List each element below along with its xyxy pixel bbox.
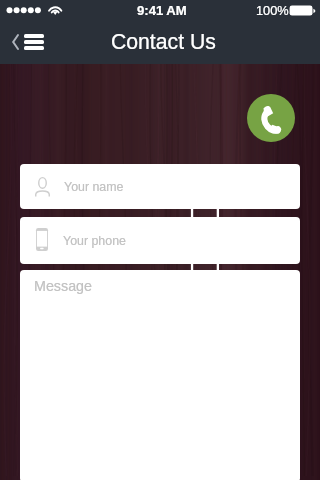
button[interactable]: Call — [247, 94, 295, 142]
button[interactable]: Your name — [20, 164, 300, 209]
button[interactable]: Menu — [8, 29, 48, 55]
staticText: Your phone — [63, 234, 126, 248]
button[interactable]: Your phone — [20, 217, 300, 264]
staticText: 9:41 AM — [137, 3, 187, 18]
staticText: Your name — [64, 180, 124, 194]
staticText: Message — [34, 278, 93, 294]
staticText: 100% — [256, 3, 289, 17]
button[interactable]: Message — [20, 270, 300, 480]
staticText: Contact Us — [111, 30, 216, 54]
